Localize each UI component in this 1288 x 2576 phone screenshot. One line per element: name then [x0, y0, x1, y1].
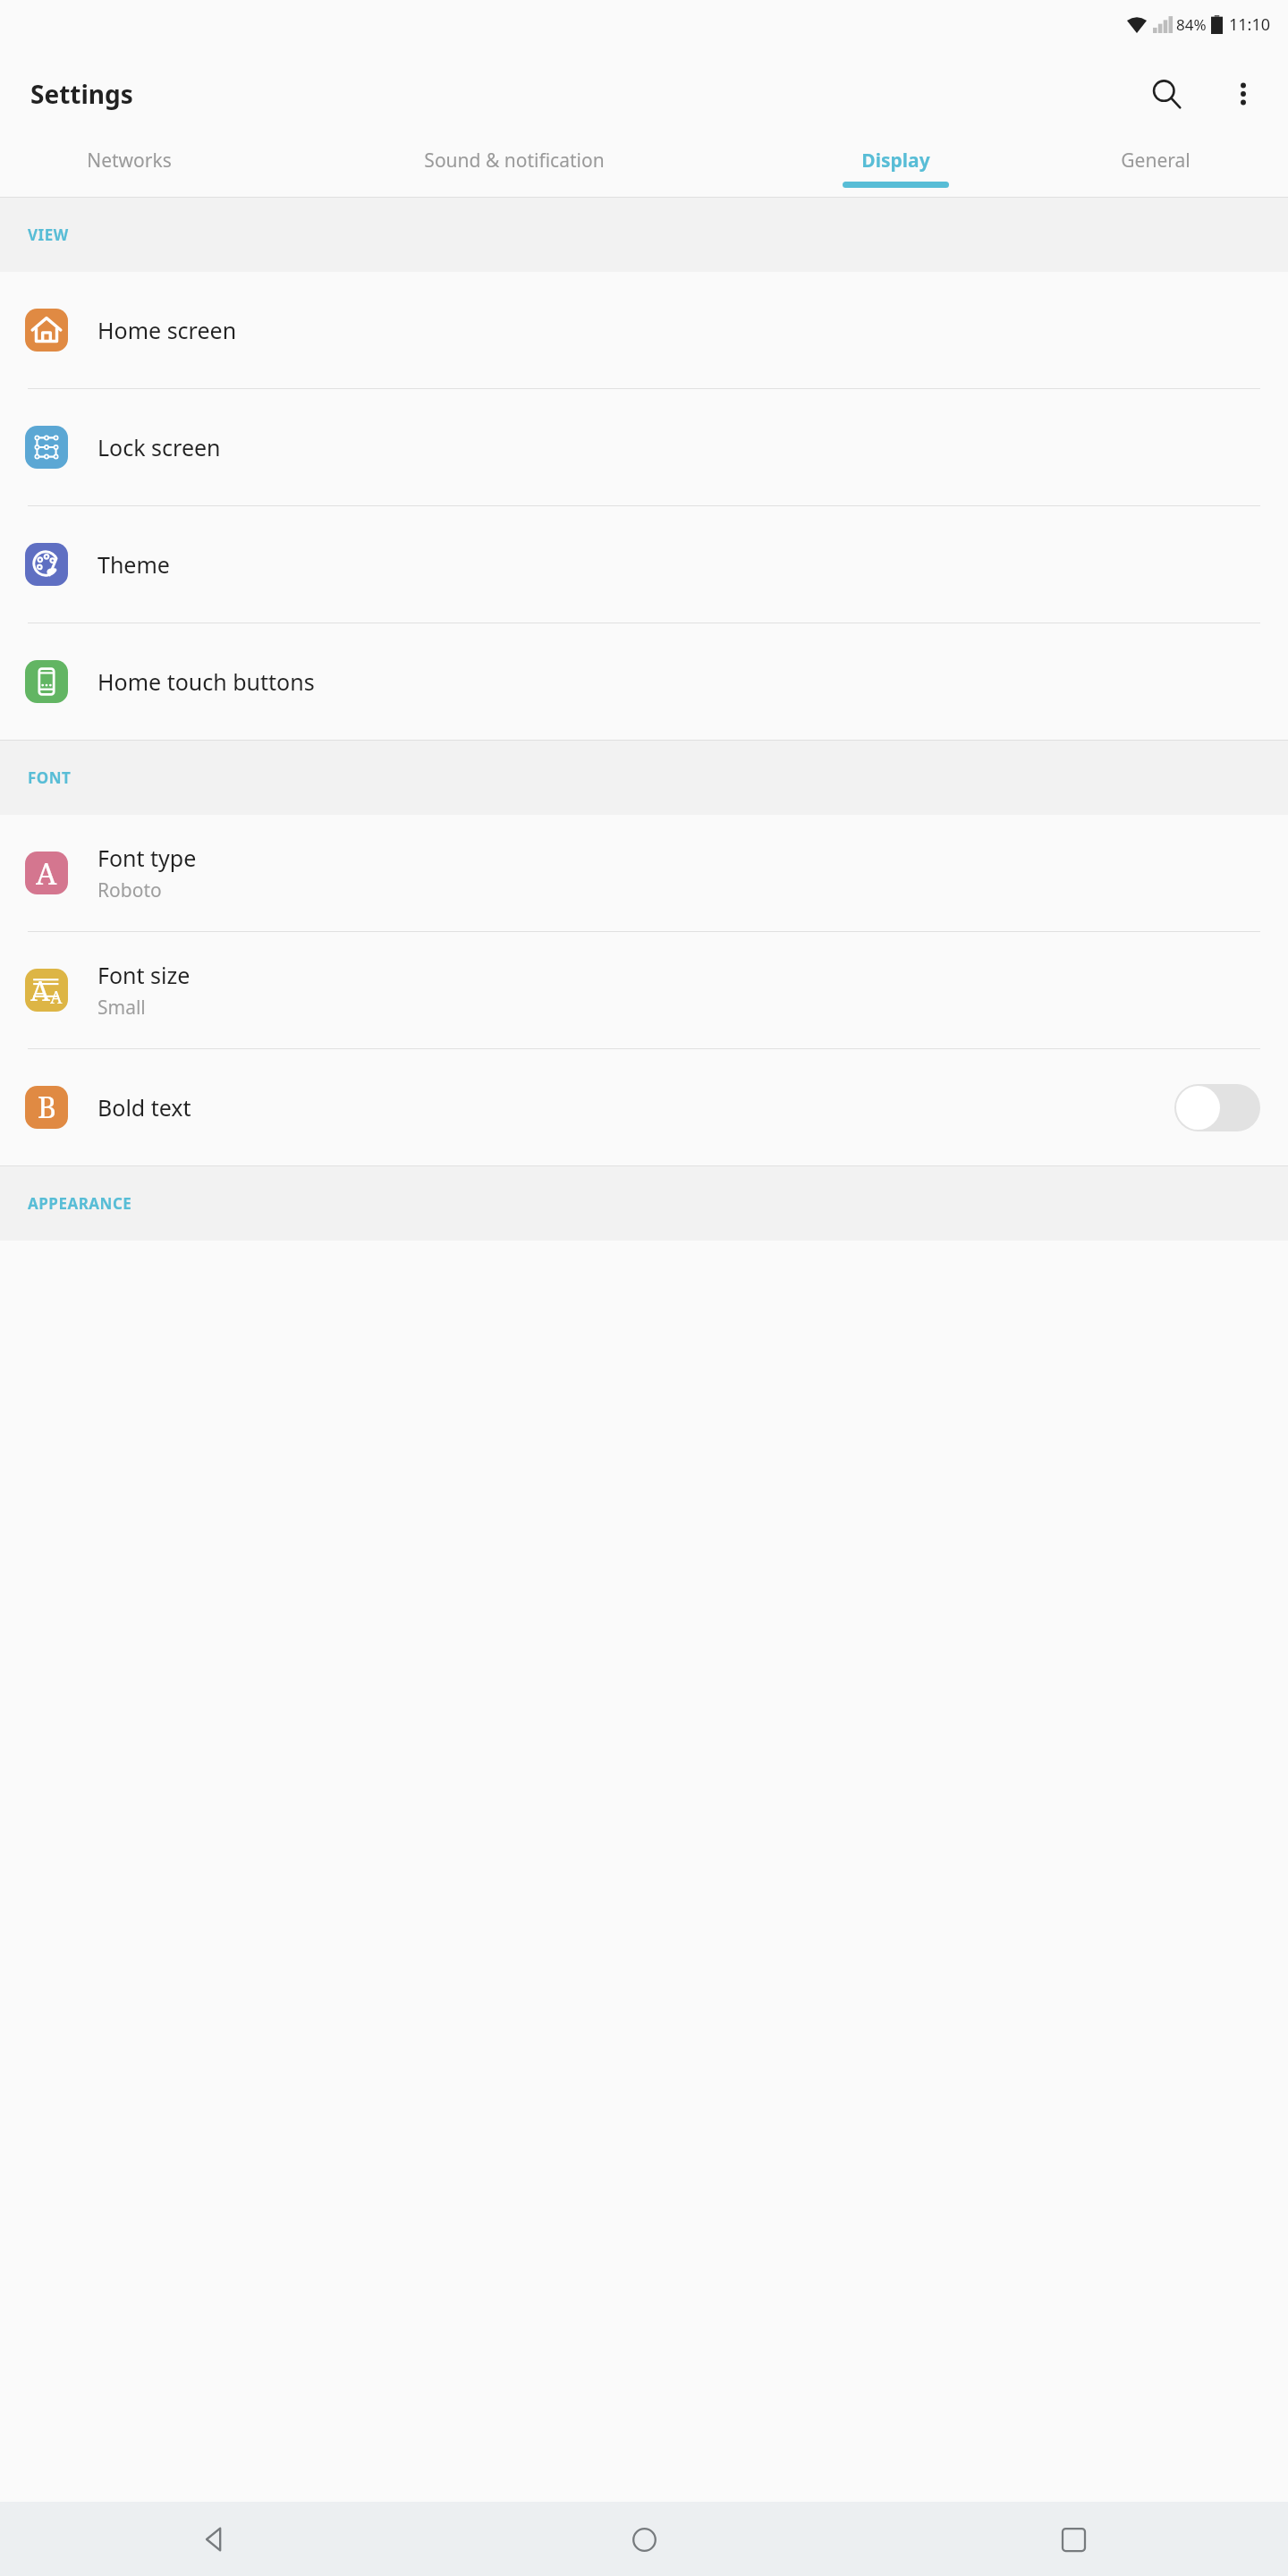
button[interactable]: Home touch buttons	[0, 623, 1288, 740]
staticText: B	[38, 1088, 56, 1127]
button[interactable]: Home	[608, 2504, 680, 2575]
staticText: Display	[861, 148, 930, 174]
staticText: Home screen	[97, 315, 237, 345]
staticText: Font size	[97, 960, 191, 990]
button[interactable]: General	[1022, 139, 1288, 197]
button[interactable]: Lock screen	[0, 389, 1288, 505]
staticText: Font type	[97, 843, 197, 873]
staticText: 11:10	[1229, 13, 1271, 36]
button[interactable]: Networks	[0, 139, 258, 197]
button[interactable]: A	[0, 932, 1288, 1048]
staticText: Settings	[30, 77, 133, 111]
staticText: Roboto	[97, 877, 162, 903]
staticText: FONT	[28, 767, 72, 788]
staticText: Lock screen	[97, 432, 221, 462]
button[interactable]: Sound & notification	[258, 139, 769, 197]
staticText: A	[36, 853, 57, 894]
staticText: A	[50, 986, 63, 1009]
staticText: Sound & notification	[424, 148, 605, 174]
button[interactable]: B	[0, 1049, 1288, 1165]
staticText: Small	[97, 995, 146, 1021]
staticText: Bold text	[97, 1092, 191, 1123]
button[interactable]: A	[0, 815, 1288, 931]
staticText: Home touch buttons	[97, 666, 315, 697]
button[interactable]: Recent apps	[1038, 2504, 1109, 2575]
staticText: Networks	[87, 148, 172, 174]
button[interactable]: Display	[769, 139, 1022, 197]
staticText: Theme	[97, 549, 170, 580]
button[interactable]: Back	[179, 2504, 250, 2575]
button[interactable]: Home screen	[0, 272, 1288, 388]
button[interactable]	[1174, 1084, 1260, 1131]
staticText: General	[1121, 148, 1191, 174]
staticText: 84%	[1176, 14, 1207, 35]
button[interactable]: Theme	[0, 506, 1288, 623]
staticText: A	[30, 971, 50, 1009]
staticText: VIEW	[28, 225, 69, 245]
button[interactable]: More options	[1216, 67, 1270, 121]
button[interactable]: Search	[1140, 67, 1193, 121]
staticText: APPEARANCE	[28, 1193, 132, 1214]
